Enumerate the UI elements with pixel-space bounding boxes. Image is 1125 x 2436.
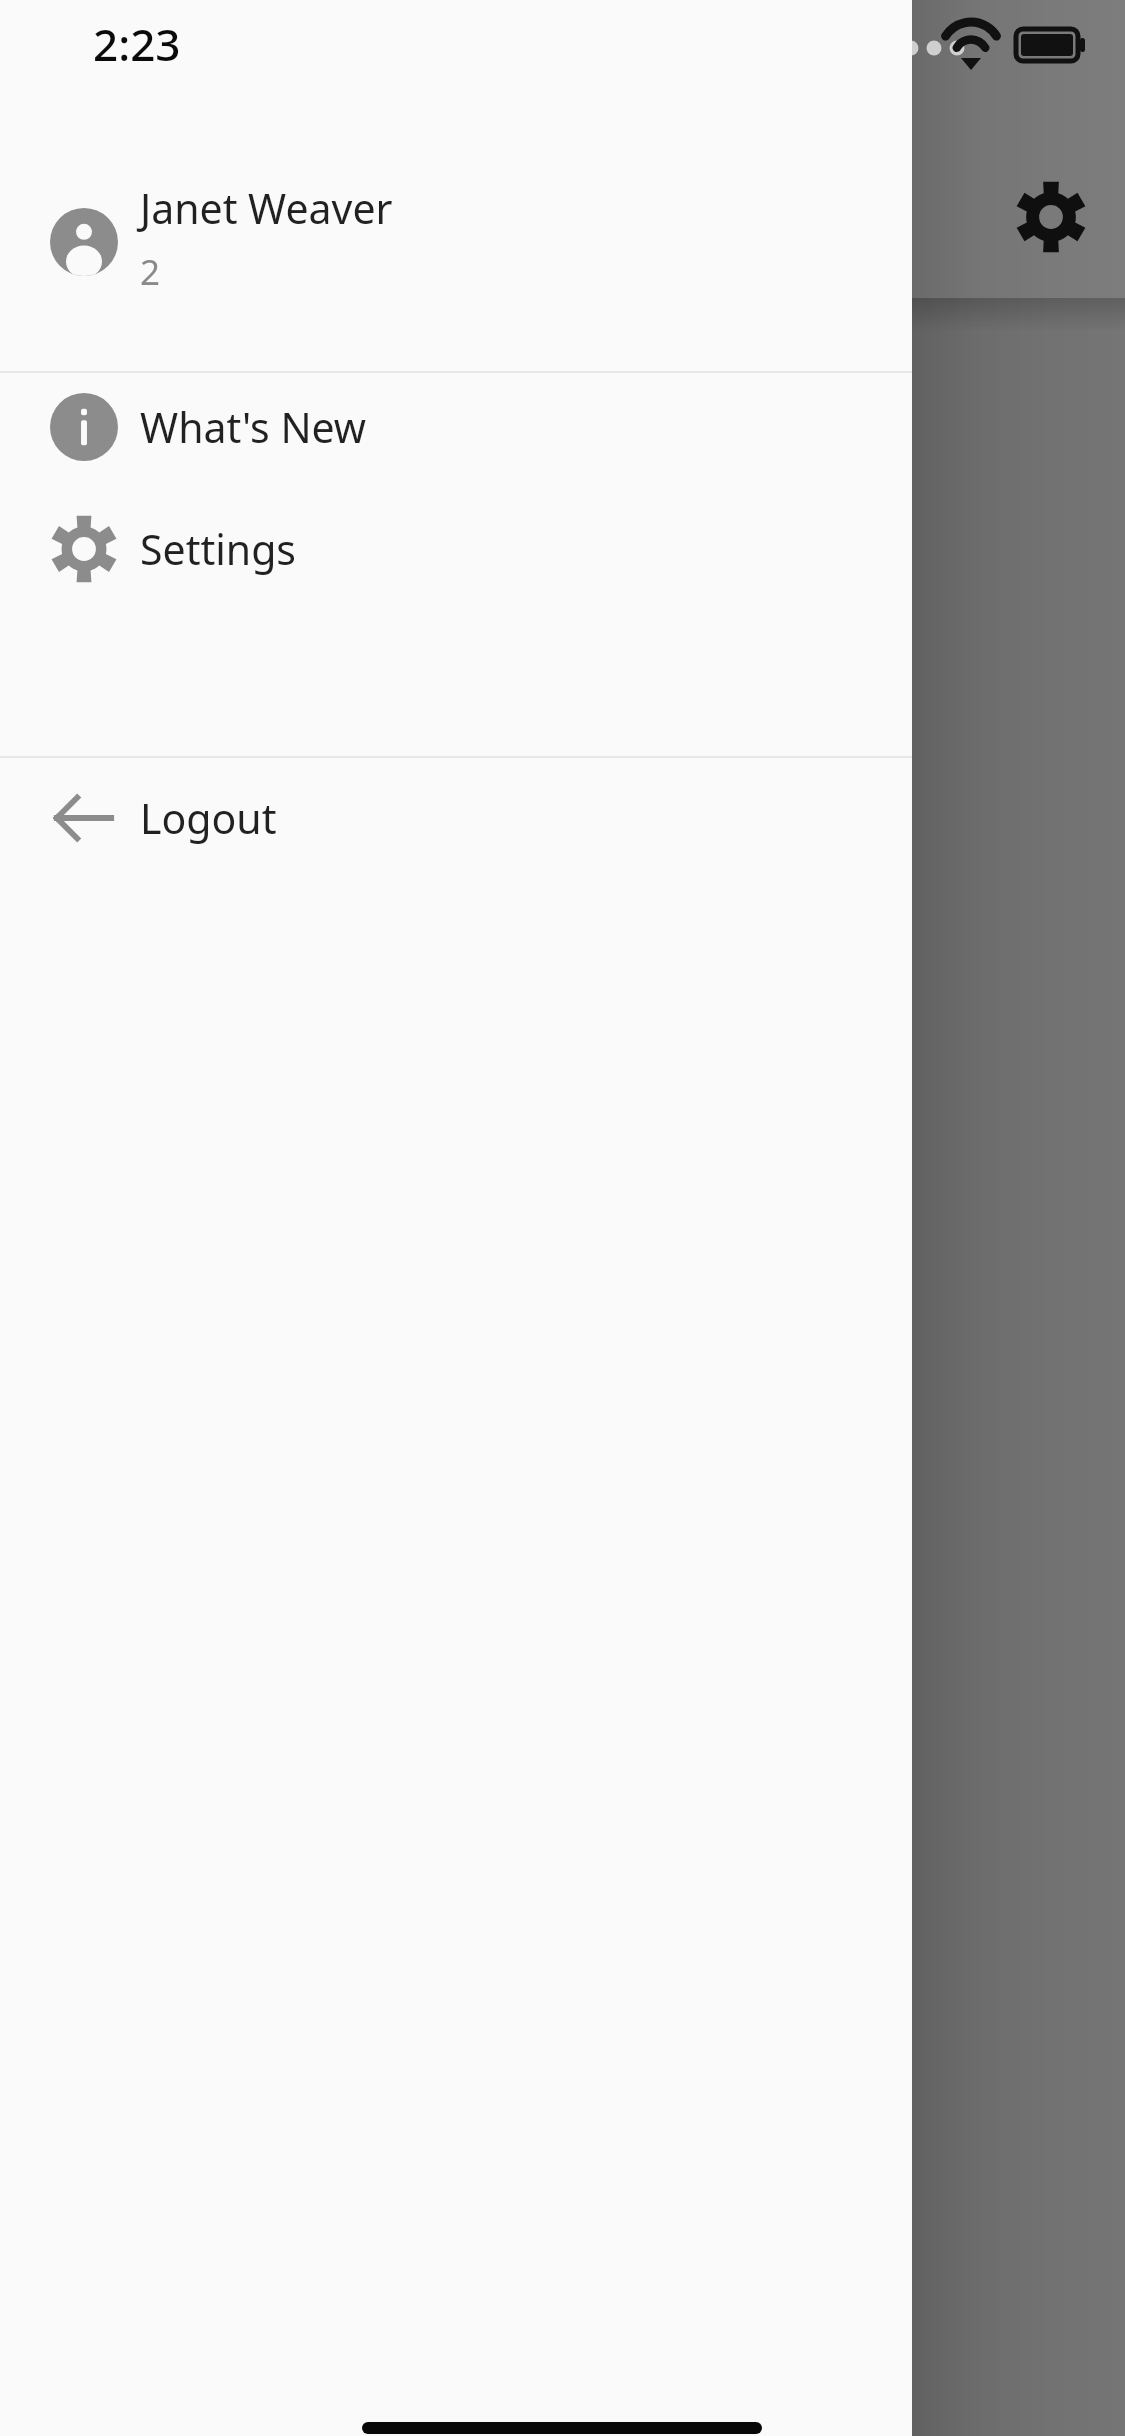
button[interactable]: Settings — [1011, 177, 1091, 257]
staticText: What's New — [140, 399, 367, 455]
button[interactable]: What's New — [0, 373, 912, 481]
staticText: Logout — [140, 790, 277, 846]
button[interactable]: Logout — [0, 758, 912, 973]
button[interactable]: Janet Weaver — [0, 88, 912, 371]
staticText: 2:23 — [93, 14, 181, 74]
staticText: 2 — [140, 248, 161, 296]
staticText: Janet Weaver — [140, 180, 393, 236]
staticText: Settings — [140, 521, 297, 577]
button[interactable]: Settings — [0, 481, 912, 756]
